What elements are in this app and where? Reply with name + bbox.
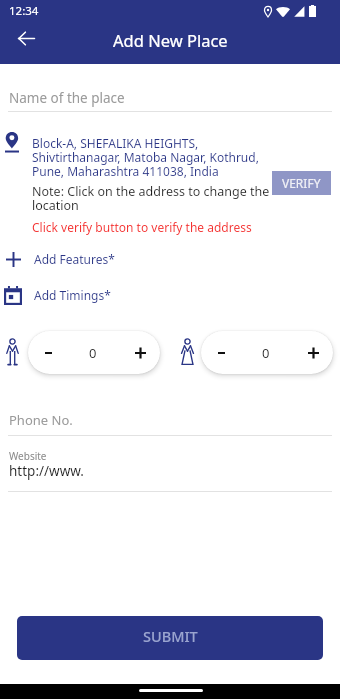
staticText: Block-A, SHEFALIKA HEIGHTS, Shivtirthana… bbox=[32, 135, 260, 180]
staticText: Phone No. bbox=[9, 411, 73, 429]
staticText: 0 bbox=[262, 344, 270, 362]
staticText: Click verify button to verify the addres… bbox=[32, 219, 252, 235]
staticText: VERIFY bbox=[282, 175, 321, 191]
button[interactable]: Increase bbox=[127, 340, 153, 366]
staticText: Name of the place bbox=[9, 89, 125, 107]
button[interactable]: SUBMIT bbox=[17, 616, 323, 660]
staticText: Add Timings* bbox=[34, 287, 111, 303]
staticText: 0 bbox=[89, 344, 97, 362]
staticText: Add Features* bbox=[34, 251, 115, 267]
staticText: Note: Click on the address to change the… bbox=[32, 183, 272, 214]
button[interactable]: Decrease bbox=[208, 340, 234, 366]
button[interactable]: Increase bbox=[300, 340, 326, 366]
staticText: Add New Place bbox=[113, 29, 228, 51]
button[interactable]: VERIFY bbox=[272, 171, 331, 195]
button[interactable]: Add Timings* bbox=[0, 282, 340, 308]
button[interactable]: Decrease bbox=[35, 340, 61, 366]
button[interactable]: Back bbox=[9, 21, 43, 55]
staticText: 12:34 bbox=[9, 3, 39, 19]
staticText: Website bbox=[9, 449, 47, 463]
staticText: SUBMIT bbox=[143, 626, 198, 646]
button[interactable]: Add Features* bbox=[0, 246, 340, 272]
staticText: http://www. bbox=[9, 462, 84, 480]
